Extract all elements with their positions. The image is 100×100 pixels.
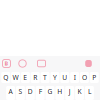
staticText: P	[92, 73, 96, 82]
staticText: I	[74, 73, 76, 82]
staticText: R	[33, 73, 37, 82]
staticText: F	[39, 87, 42, 96]
staticText: Y	[53, 73, 57, 82]
staticText: K	[77, 87, 81, 96]
staticText: J	[69, 87, 71, 96]
button[interactable]: R	[31, 72, 40, 83]
button[interactable]: Photos	[32, 59, 51, 68]
button[interactable]: T	[41, 72, 49, 83]
button[interactable]: K	[75, 86, 84, 100]
button[interactable]: S	[16, 86, 25, 100]
button[interactable]: Q	[1, 72, 10, 83]
staticText: T	[43, 73, 47, 82]
button[interactable]: U	[60, 72, 69, 83]
staticText: W	[12, 73, 18, 82]
button[interactable]: Emoji	[13, 59, 32, 68]
staticText: A	[9, 87, 13, 96]
button[interactable]: Stickers	[83, 59, 94, 68]
button[interactable]: D	[26, 86, 35, 100]
button[interactable]: H	[55, 86, 64, 100]
button[interactable]: L	[85, 86, 94, 100]
button[interactable]: E	[21, 72, 30, 83]
button[interactable]: J	[65, 86, 74, 100]
button[interactable]: Keyboard	[0, 59, 13, 68]
button[interactable]: Y	[50, 72, 59, 83]
button[interactable]: G	[45, 86, 54, 100]
staticText: H	[57, 87, 62, 96]
staticText: E	[23, 73, 27, 82]
button[interactable]: O	[80, 72, 89, 83]
staticText: L	[88, 87, 91, 96]
staticText: U	[62, 73, 67, 82]
staticText: Q	[3, 73, 8, 82]
button[interactable]: P	[90, 72, 99, 83]
staticText: B	[4, 60, 8, 67]
staticText: G	[47, 87, 52, 96]
button[interactable]: W	[11, 72, 20, 83]
button[interactable]: A	[6, 86, 15, 100]
staticText: D	[28, 87, 33, 96]
button[interactable]: F	[36, 86, 45, 100]
button[interactable]: I	[70, 72, 79, 83]
staticText: O	[82, 73, 87, 82]
staticText: S	[18, 87, 22, 96]
